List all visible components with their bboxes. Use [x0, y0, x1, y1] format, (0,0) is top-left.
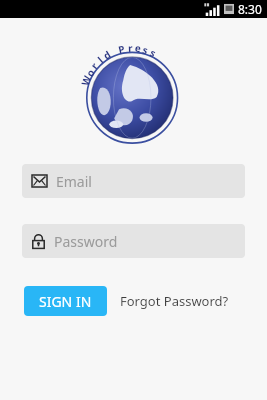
staticText: Forgot Password? — [120, 292, 229, 310]
staticText: s — [149, 45, 159, 59]
staticText: r — [128, 41, 133, 53]
staticText: P — [117, 41, 126, 55]
button[interactable]: SIGN IN — [24, 286, 107, 316]
staticText: Email — [56, 172, 92, 191]
button[interactable]: Password — [22, 224, 245, 258]
staticText: SIGN IN — [39, 292, 92, 311]
staticText: r — [87, 59, 100, 71]
staticText: 8:30 — [238, 1, 262, 17]
other: Signal — [204, 3, 221, 16]
button[interactable]: Forgot Password? — [120, 286, 229, 316]
staticText: d — [100, 47, 113, 61]
staticText: e — [134, 41, 142, 53]
staticText: o — [83, 66, 96, 78]
staticText: Password — [54, 232, 118, 251]
staticText: W — [78, 73, 92, 87]
staticText: s — [141, 42, 150, 56]
other: Battery — [224, 3, 234, 15]
button[interactable]: Email — [22, 164, 245, 198]
staticText: l — [94, 53, 105, 64]
